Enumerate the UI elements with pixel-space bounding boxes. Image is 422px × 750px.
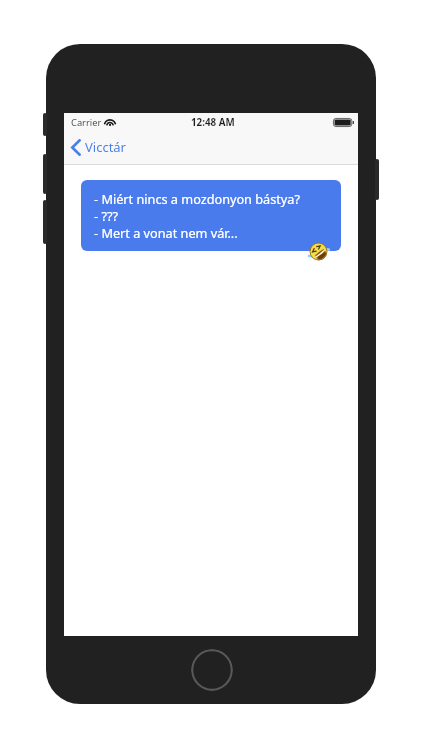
staticText: - ??? [94,207,118,224]
button[interactable]: - Miért nincs a mozdonyon bástya? [81,180,341,251]
button[interactable]: Vicctár [64,134,136,160]
button[interactable]: Home [191,649,233,691]
staticText: Vicctár [85,138,126,156]
staticText: 12:48 AM [191,116,235,129]
staticText: Carrier [71,116,102,129]
staticText: - Mert a vonat nem vár... [94,224,238,241]
staticText: - Miért nincs a mozdonyon bástya? [94,190,300,207]
other: Laughing reaction [309,242,328,261]
